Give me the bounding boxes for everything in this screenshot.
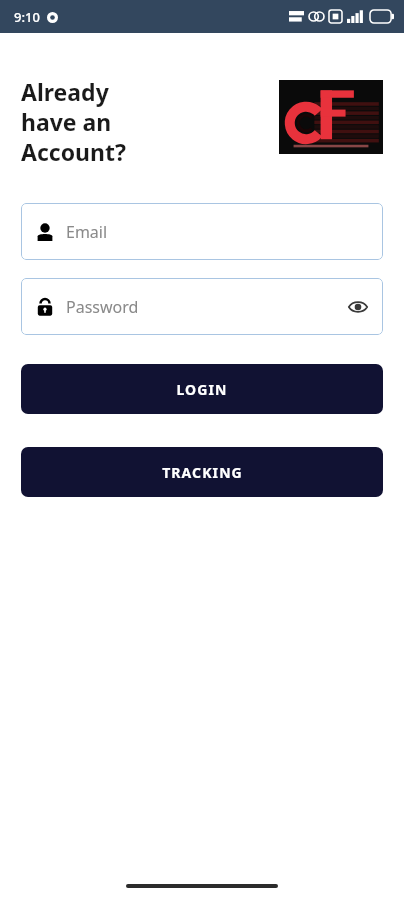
staticText: Already have an Account? [21, 76, 126, 167]
staticText: Password [66, 296, 139, 318]
staticText: LOGIN [176, 380, 228, 399]
button[interactable]: Show password [348, 297, 368, 317]
button[interactable]: LOGIN [21, 364, 383, 414]
staticText: 9:10 [14, 8, 40, 26]
staticText: TRACKING [162, 463, 243, 482]
button[interactable]: TRACKING [21, 447, 383, 497]
staticText: Email [66, 221, 108, 243]
button[interactable]: Password field [21, 278, 383, 335]
button[interactable]: Email field [21, 203, 383, 260]
